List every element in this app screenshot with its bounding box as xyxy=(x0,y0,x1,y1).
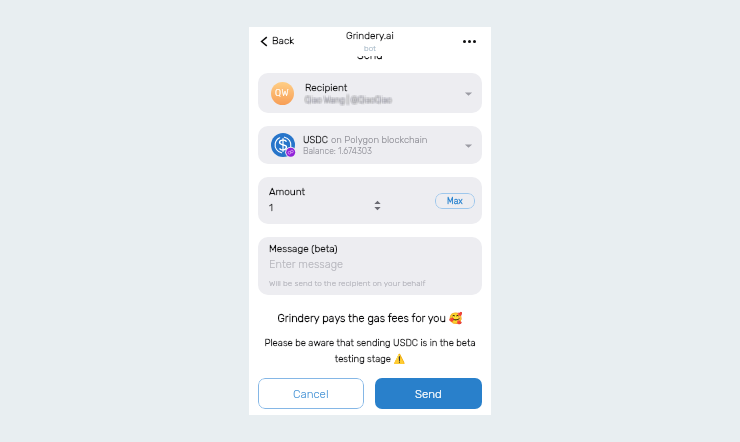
staticText: Message (beta) xyxy=(269,243,338,255)
staticText: USDC xyxy=(303,134,328,145)
staticText: Qiao Wang | @QiaoQiao xyxy=(305,96,392,106)
staticText: bot xyxy=(364,44,376,53)
staticText: Qiao Wang | @QiaoQiao xyxy=(304,95,391,105)
button[interactable]: QW xyxy=(258,73,482,113)
staticText: Send xyxy=(415,387,442,401)
staticText: Back xyxy=(272,35,295,47)
staticText: Qiao Wang | @QiaoQiao xyxy=(304,96,391,106)
button[interactable]: Amount xyxy=(258,177,482,224)
staticText: Recipient xyxy=(305,82,348,94)
button[interactable]: Back xyxy=(259,32,296,50)
staticText: Grindery.ai xyxy=(346,30,394,42)
staticText: Qiao Wang | @QiaoQiao xyxy=(304,96,391,106)
staticText: Qiao Wang | @QiaoQiao xyxy=(304,95,391,105)
staticText: Qiao Wang | @QiaoQiao xyxy=(304,94,391,104)
button[interactable]: More options xyxy=(459,32,479,50)
staticText: Qiao Wang | @QiaoQiao xyxy=(306,94,393,104)
staticText: Cancel xyxy=(293,387,329,401)
button[interactable]: Cancel xyxy=(258,378,364,409)
staticText: Send xyxy=(357,56,383,61)
staticText: Enter message xyxy=(269,258,344,271)
staticText: Balance: 1.674303 xyxy=(303,146,372,156)
staticText: Qiao Wang | @QiaoQiao xyxy=(304,94,391,104)
staticText: Amount xyxy=(269,186,306,198)
staticText: Qiao Wang | @QiaoQiao xyxy=(306,95,393,105)
staticText: QW xyxy=(275,88,290,99)
staticText: Please be aware that sending USDC is in … xyxy=(260,337,480,364)
staticText: Qiao Wang | @QiaoQiao xyxy=(305,95,392,105)
button[interactable]: Message (beta) xyxy=(258,237,482,295)
staticText: Grindery pays the gas fees for you 🥰 xyxy=(258,312,482,325)
staticText: Max xyxy=(447,196,463,206)
staticText: Qiao Wang | @QiaoQiao xyxy=(306,94,393,104)
button[interactable]: Send xyxy=(375,378,482,409)
button[interactable]: USDC xyxy=(258,126,482,164)
staticText: Qiao Wang | @QiaoQiao xyxy=(305,94,392,104)
staticText: Qiao Wang | @QiaoQiao xyxy=(306,96,393,106)
staticText: Qiao Wang | @QiaoQiao xyxy=(306,96,393,106)
staticText: Qiao Wang | @QiaoQiao xyxy=(306,95,393,105)
staticText: Will be send to the recipient on your be… xyxy=(269,278,426,288)
staticText: 1 xyxy=(269,202,273,214)
staticText: on Polygon blockchain xyxy=(331,134,428,145)
button[interactable]: Max xyxy=(435,193,475,209)
